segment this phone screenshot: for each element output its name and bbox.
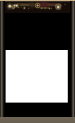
- button[interactable]: Ornate vintage book cover: [0, 0, 75, 123]
